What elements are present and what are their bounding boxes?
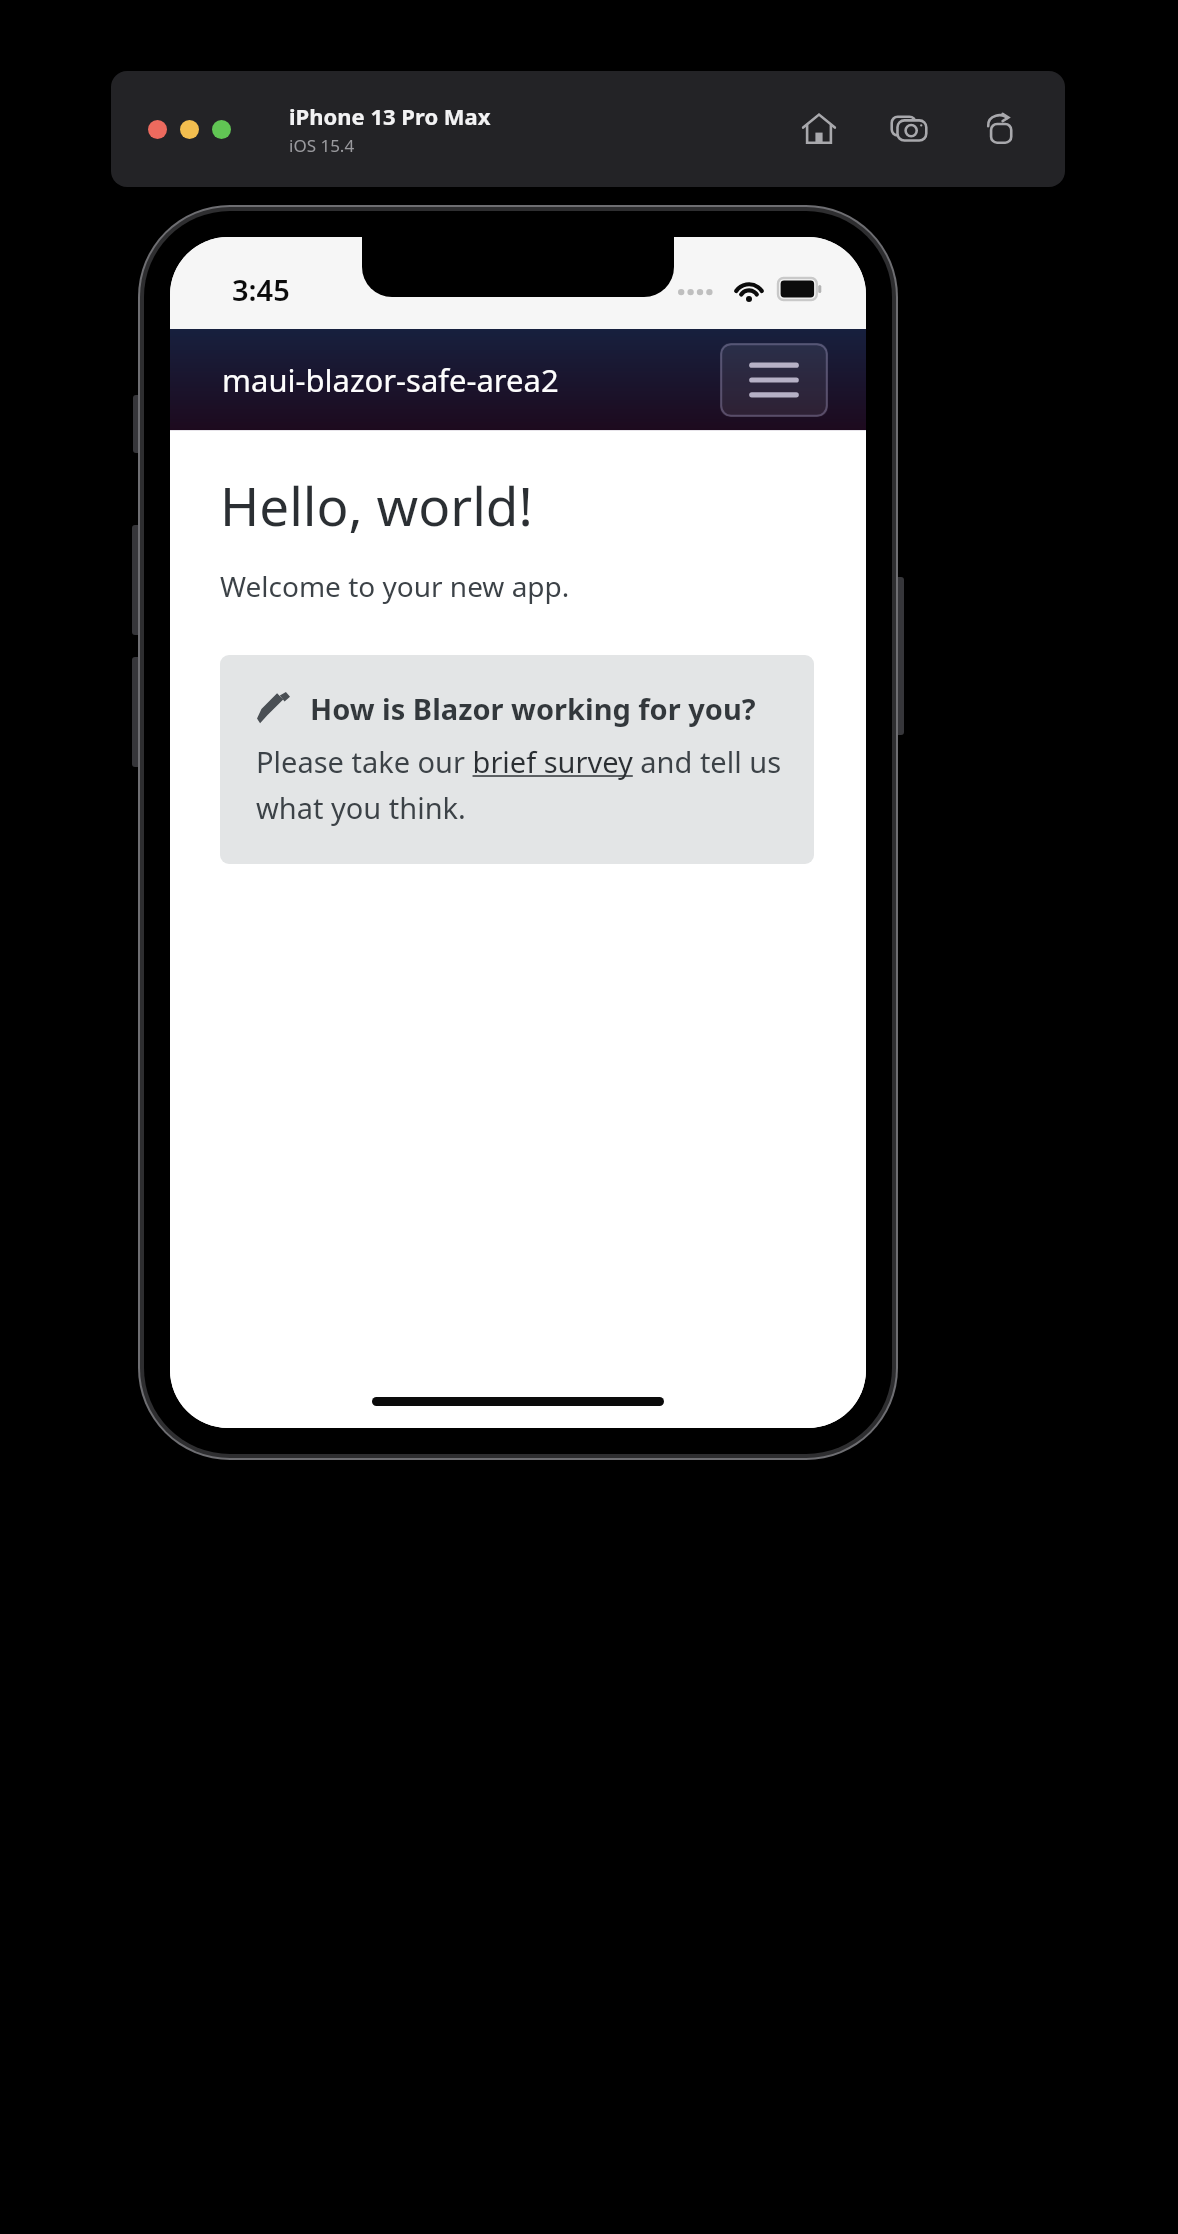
staticText: Welcome to your new app. bbox=[220, 567, 570, 605]
staticText: Please take our brief survey and tell us… bbox=[256, 742, 784, 828]
button[interactable]: Close bbox=[148, 120, 167, 139]
button[interactable]: Toggle navigation bbox=[720, 343, 828, 417]
staticText: Hello, world! bbox=[220, 469, 533, 541]
staticText: 3:45 bbox=[232, 270, 290, 309]
button[interactable]: Home bbox=[795, 105, 843, 153]
button[interactable]: Zoom bbox=[212, 120, 231, 139]
button[interactable]: Minimise bbox=[180, 120, 199, 139]
staticText: iPhone 13 Pro Max bbox=[289, 101, 491, 131]
staticText: How is Blazor working for you? bbox=[310, 689, 756, 728]
button[interactable]: How is Blazor working for you? bbox=[220, 655, 814, 864]
staticText: maui-blazor-safe-area2 bbox=[222, 359, 559, 401]
staticText: iOS 15.4 bbox=[289, 134, 355, 157]
button[interactable]: Screenshot bbox=[885, 105, 933, 153]
button[interactable]: Rotate bbox=[975, 105, 1023, 153]
